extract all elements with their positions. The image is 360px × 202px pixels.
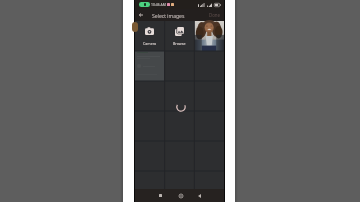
staticText: Select images bbox=[152, 12, 185, 19]
button[interactable]: Camera bbox=[135, 21, 164, 51]
button[interactable]: Back bbox=[195, 191, 204, 200]
staticText: Browse bbox=[173, 41, 186, 46]
button[interactable] bbox=[164, 81, 194, 111]
button[interactable]: Back bbox=[135, 9, 147, 21]
staticText: Done bbox=[209, 12, 221, 18]
button[interactable] bbox=[164, 111, 194, 141]
button[interactable] bbox=[135, 51, 164, 81]
button[interactable]: Recent apps bbox=[156, 191, 165, 200]
button[interactable] bbox=[194, 21, 224, 51]
button[interactable]: Browse bbox=[164, 21, 194, 51]
staticText: Camera bbox=[143, 41, 157, 46]
staticText: 10:46 AM bbox=[151, 2, 166, 7]
button[interactable]: Done bbox=[206, 10, 224, 20]
button[interactable]: Home bbox=[176, 191, 185, 200]
